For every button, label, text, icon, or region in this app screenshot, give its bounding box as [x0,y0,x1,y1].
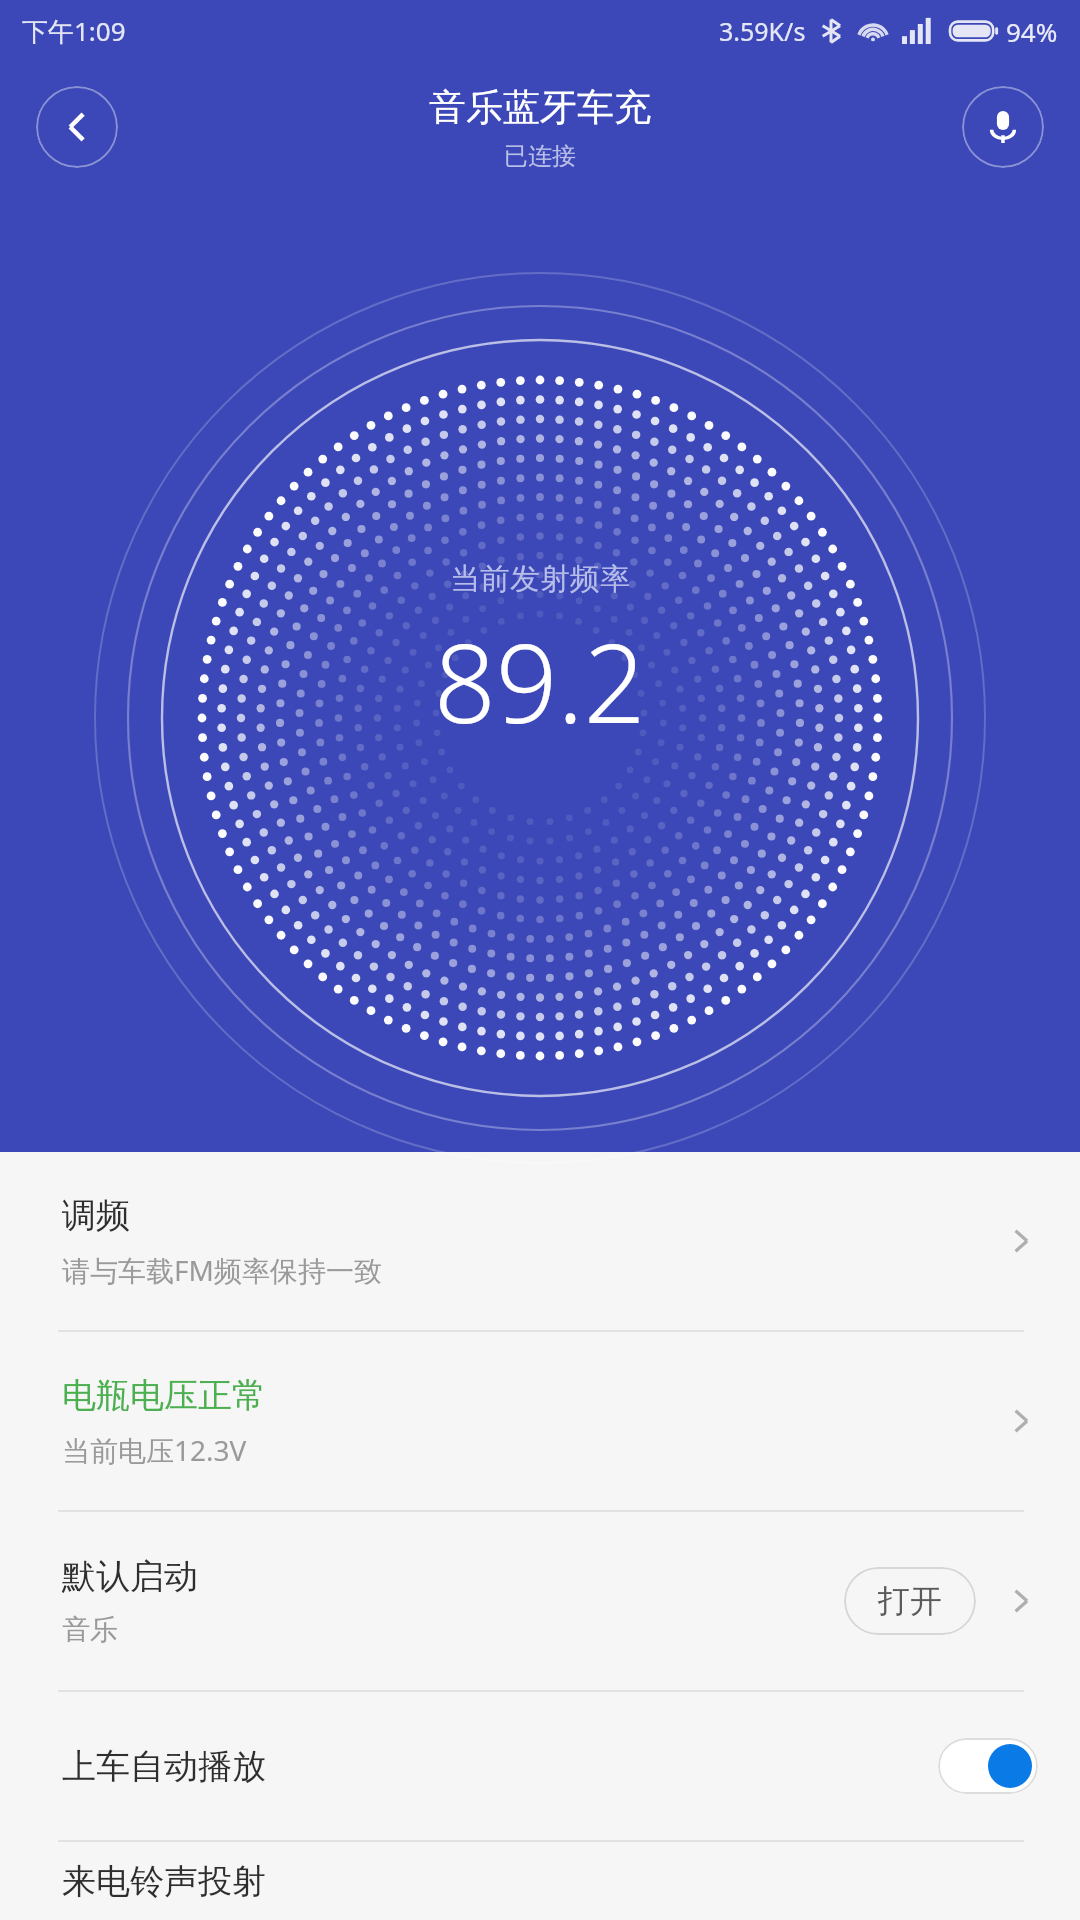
button[interactable]: Voice [962,86,1044,168]
staticText: 下午1:09 [22,13,126,49]
button[interactable]: 打开 [844,1567,976,1635]
button[interactable]: 来电铃声投射 [0,1842,1080,1920]
staticText: 94% [1006,14,1058,49]
button[interactable]: 上车自动播放 [0,1692,1080,1840]
staticText: 音乐蓝牙车充 [429,84,651,131]
button[interactable]: Toggle [938,1738,1038,1794]
staticText: 音乐 [62,1612,118,1647]
staticText: 3.59K/s [719,14,806,48]
button[interactable]: 电瓶电压正常 [0,1332,1080,1510]
staticText: 当前电压12.3V [62,1431,247,1469]
staticText: 已连接 [504,141,576,171]
staticText: 调频 [62,1194,130,1237]
button[interactable]: 调频 [0,1152,1080,1330]
staticText: 打开 [878,1581,942,1621]
staticText: 请与车载FM频率保持一致 [62,1251,382,1289]
button[interactable]: 默认启动 [0,1512,1080,1690]
staticText: 上车自动播放 [62,1745,266,1788]
staticText: 来电铃声投射 [62,1860,266,1903]
staticText: 89.2 [434,608,646,755]
staticText: 默认启动 [62,1555,198,1598]
staticText: 当前发射频率 [450,560,630,598]
staticText: 电瓶电压正常 [62,1374,266,1417]
button[interactable]: Back [36,86,118,168]
